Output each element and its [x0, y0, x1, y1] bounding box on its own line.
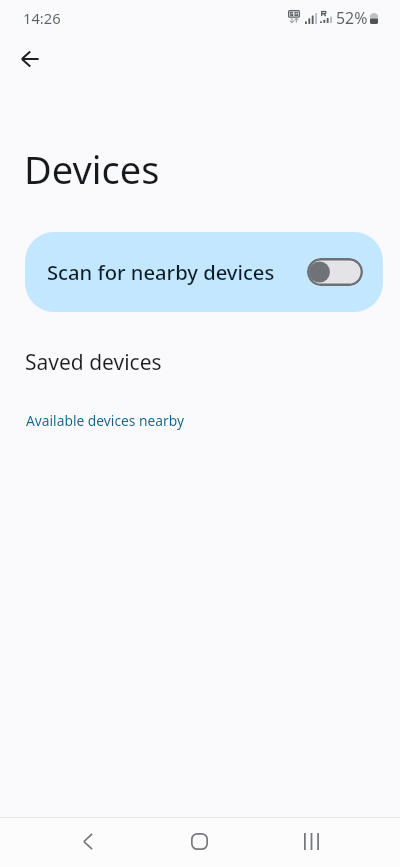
- button[interactable]: Navigate up: [10, 39, 50, 79]
- button[interactable]: Scan for nearby devices toggle: [307, 258, 363, 286]
- staticText: Scan for nearby devices: [47, 258, 275, 286]
- button[interactable]: Home: [175, 817, 224, 866]
- staticText: Devices: [24, 143, 160, 195]
- button[interactable]: Back: [63, 817, 112, 866]
- button[interactable]: Scan for nearby devices: [25, 232, 383, 312]
- staticText: 52%: [336, 7, 368, 29]
- staticText: Saved devices: [25, 348, 162, 377]
- button[interactable]: Recent apps: [287, 817, 336, 866]
- staticText: 14:26: [23, 8, 61, 28]
- staticText: Available devices nearby: [26, 411, 184, 430]
- button[interactable]: Available devices nearby: [26, 411, 184, 430]
